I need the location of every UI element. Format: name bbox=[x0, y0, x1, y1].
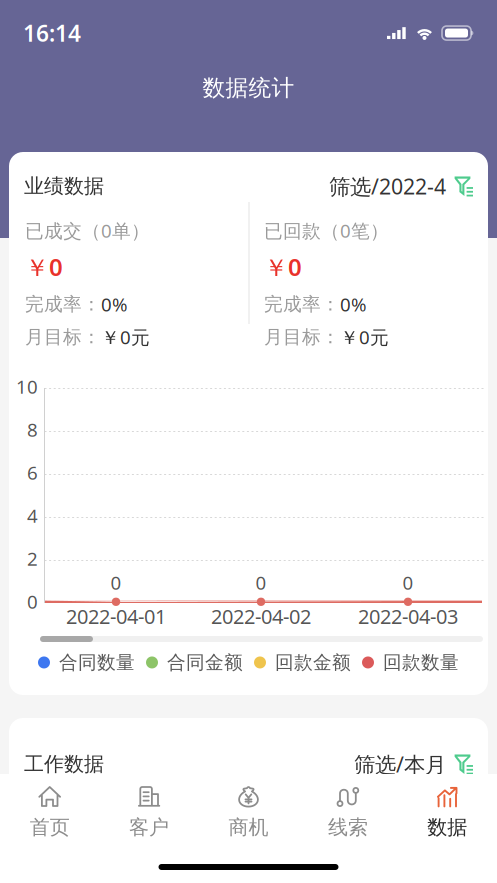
staticText: 工作数据 bbox=[24, 752, 104, 776]
button[interactable]: 商机 bbox=[199, 781, 298, 844]
staticText: 筛选/2022-4 bbox=[329, 172, 446, 200]
staticText: 已成交（0单） bbox=[25, 218, 150, 243]
staticText: 完成率： bbox=[25, 293, 101, 316]
staticText: 回款金额 bbox=[275, 651, 351, 674]
staticText: 月目标： bbox=[264, 325, 340, 348]
staticText: 0% bbox=[340, 292, 367, 317]
staticText: 首页 bbox=[30, 815, 70, 840]
staticText: 数据 bbox=[427, 815, 467, 840]
staticText: ￥0元 bbox=[340, 325, 389, 349]
button[interactable]: 首页 bbox=[0, 781, 99, 844]
staticText: 商机 bbox=[228, 815, 268, 840]
staticText: 2022-04-02 bbox=[211, 603, 311, 630]
staticText: 4 bbox=[27, 503, 38, 528]
staticText: 已回款（0笔） bbox=[264, 218, 389, 243]
staticText: 客户 bbox=[129, 815, 169, 840]
button[interactable]: 客户 bbox=[99, 781, 199, 844]
staticText: 0 bbox=[27, 589, 38, 614]
staticText: 8 bbox=[27, 417, 38, 442]
button[interactable]: 筛选/2022-4 bbox=[329, 172, 473, 200]
staticText: 10 bbox=[16, 374, 38, 399]
staticText: 完成率： bbox=[264, 293, 340, 316]
staticText: 合同金额 bbox=[167, 651, 243, 674]
staticText: ￥0 bbox=[25, 251, 63, 283]
staticText: 0 bbox=[255, 570, 266, 595]
staticText: 回款数量 bbox=[383, 651, 459, 674]
staticText: 合同数量 bbox=[59, 651, 135, 674]
button[interactable]: 线索 bbox=[298, 781, 398, 844]
staticText: 线索 bbox=[328, 815, 368, 840]
staticText: ￥0 bbox=[264, 251, 302, 283]
staticText: 2022-04-01 bbox=[66, 603, 166, 630]
staticText: 2022-04-03 bbox=[358, 603, 458, 630]
staticText: 数据统计 bbox=[202, 74, 294, 102]
staticText: 筛选/本月 bbox=[354, 750, 446, 778]
staticText: 16:14 bbox=[23, 18, 81, 48]
staticText: 6 bbox=[27, 460, 38, 485]
staticText: 2 bbox=[27, 546, 38, 571]
staticText: 月目标： bbox=[25, 325, 101, 348]
staticText: 0 bbox=[110, 570, 121, 595]
staticText: 0% bbox=[101, 292, 128, 317]
button[interactable]: 数据 bbox=[398, 781, 497, 844]
staticText: 0 bbox=[402, 570, 413, 595]
button[interactable]: 筛选/本月 bbox=[354, 750, 473, 778]
staticText: 业绩数据 bbox=[24, 174, 104, 198]
staticText: ￥0元 bbox=[101, 325, 150, 349]
